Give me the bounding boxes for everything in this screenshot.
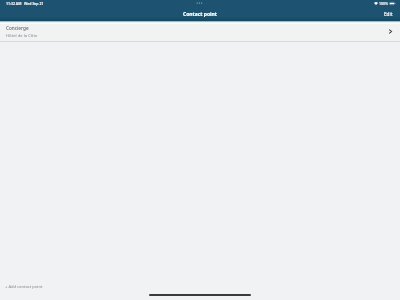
staticText: Concierge	[6, 25, 29, 31]
button[interactable]: + Add contact point	[3, 283, 45, 291]
staticText: 11:32 AM Wed Sep 21	[6, 1, 44, 6]
button[interactable]: Edit	[381, 9, 396, 19]
button[interactable]: Concierge, Hôtel de la Côte	[0, 24, 400, 42]
staticText: Edit	[384, 11, 393, 17]
staticText: Contact point	[183, 11, 218, 18]
other: Open	[389, 29, 392, 34]
staticText: Hôtel de la Côte	[6, 33, 38, 39]
staticText: + Add contact point	[5, 284, 43, 290]
staticText: 100%	[379, 1, 388, 6]
